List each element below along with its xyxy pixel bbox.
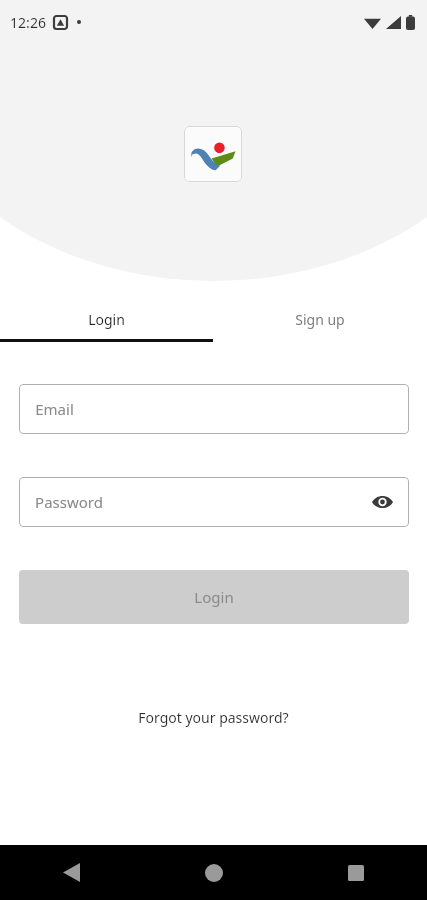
staticText: Sign up [295,310,345,329]
button[interactable]: Home [143,845,285,900]
staticText: Forgot your password? [138,708,289,727]
staticText: Email [35,399,74,419]
button[interactable]: Sign up [213,297,427,341]
button[interactable]: Show password [365,485,399,519]
button[interactable]: Email [19,384,409,434]
button[interactable]: Forgot your password? [0,700,427,734]
staticText: 12:26 [10,13,46,32]
button[interactable]: Login [19,570,409,624]
button[interactable]: Recents [285,845,427,900]
button[interactable]: Password [19,477,409,527]
button[interactable]: Back [0,845,143,900]
button[interactable]: Login [0,297,213,341]
staticText: Login [194,587,234,607]
staticText: Login [88,310,125,329]
staticText: Password [35,492,103,512]
